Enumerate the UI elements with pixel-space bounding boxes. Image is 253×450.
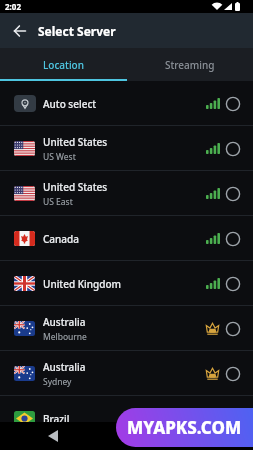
staticText: Location: [43, 58, 84, 72]
staticText: United States: [43, 180, 108, 194]
staticText: US East: [43, 196, 73, 208]
button[interactable]: [8, 19, 32, 43]
staticText: Australia: [43, 360, 86, 374]
staticText: Auto select: [43, 97, 97, 111]
button[interactable]: [40, 425, 66, 447]
button[interactable]: Australia: [0, 351, 253, 396]
button[interactable]: Canada: [0, 216, 253, 261]
staticText: United Kingdom: [43, 277, 121, 291]
staticText: Australia: [43, 315, 86, 329]
button[interactable]: Location: [0, 48, 126, 81]
button[interactable]: MYAPKS.COM: [116, 408, 253, 447]
staticText: Canada: [43, 232, 79, 246]
staticText: Select Server: [38, 23, 116, 39]
staticText: 2:02: [5, 1, 21, 12]
staticText: Streaming: [165, 58, 215, 72]
button[interactable]: Brazil: [0, 396, 253, 441]
button[interactable]: United States: [0, 126, 253, 171]
button[interactable]: United Kingdom: [0, 261, 253, 306]
staticText: United States: [43, 135, 108, 149]
button[interactable]: United States: [0, 171, 253, 216]
button[interactable]: Auto select: [0, 81, 253, 126]
button[interactable]: Streaming: [126, 48, 253, 81]
staticText: MYAPKS.COM: [127, 416, 242, 439]
staticText: Melbourne: [43, 331, 87, 343]
staticText: US West: [43, 151, 76, 163]
button[interactable]: Australia: [0, 306, 253, 351]
staticText: Brazil: [43, 412, 70, 426]
staticText: Sydney: [43, 376, 72, 388]
